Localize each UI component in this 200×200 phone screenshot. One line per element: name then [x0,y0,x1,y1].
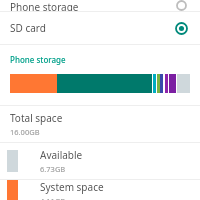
staticText: Phone storage [10,54,66,65]
button[interactable]: Phone storage option [172,0,190,11]
staticText: 6.73GB [40,164,66,174]
staticText: Phone storage [10,0,172,11]
button[interactable]: SD card option selected [172,19,190,37]
button[interactable]: SD card [0,12,200,44]
staticText: System space [40,180,104,194]
staticText: Available [40,148,83,162]
button[interactable]: System space [0,180,200,200]
staticText: SD card [10,21,172,35]
staticText: 4.11GB [40,196,66,200]
button[interactable]: Available [0,143,200,179]
button[interactable]: Total space [0,106,200,142]
staticText: 16.00GB [10,127,40,137]
button[interactable]: Phone storage [0,0,200,11]
staticText: Total space [10,111,63,125]
